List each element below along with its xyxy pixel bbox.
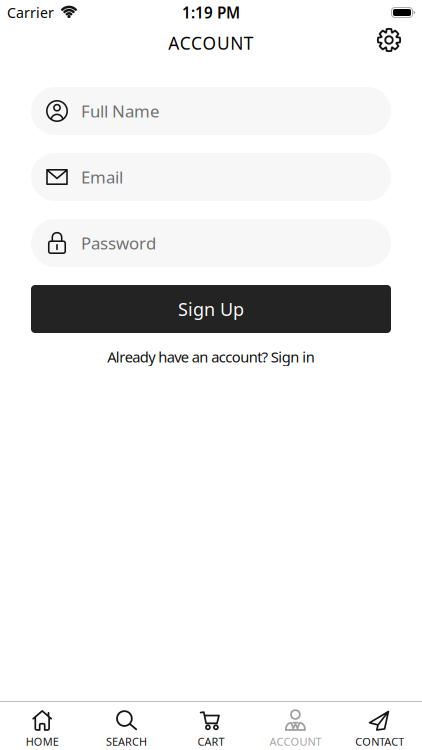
staticText: Sign Up [178, 297, 244, 321]
staticText: ACCOUNT [168, 31, 254, 54]
button[interactable]: SEARCH [84, 703, 169, 749]
button[interactable]: CART [169, 703, 253, 749]
staticText: Carrier [7, 3, 54, 22]
staticText: CART [197, 734, 224, 749]
staticText: Email [81, 166, 123, 188]
button[interactable]: Email [31, 153, 391, 201]
button[interactable]: HOME [0, 703, 84, 749]
staticText: ACCOUNT [269, 734, 321, 749]
button[interactable]: Already have an account? Sign in [107, 347, 315, 366]
staticText: CONTACT [355, 734, 404, 749]
button[interactable]: Settings [377, 28, 401, 52]
staticText: HOME [26, 734, 59, 749]
button[interactable]: ACCOUNT [253, 703, 338, 749]
staticText: Full Name [81, 100, 159, 122]
staticText: SEARCH [106, 734, 147, 749]
button[interactable]: Full Name [31, 87, 391, 135]
staticText: Already have an account? Sign in [107, 347, 315, 366]
staticText: Password [81, 232, 156, 254]
button[interactable]: CONTACT [338, 703, 422, 749]
button[interactable]: Password [31, 219, 391, 267]
button[interactable]: Sign Up [31, 285, 391, 333]
staticText: 1:19 PM [182, 2, 240, 23]
